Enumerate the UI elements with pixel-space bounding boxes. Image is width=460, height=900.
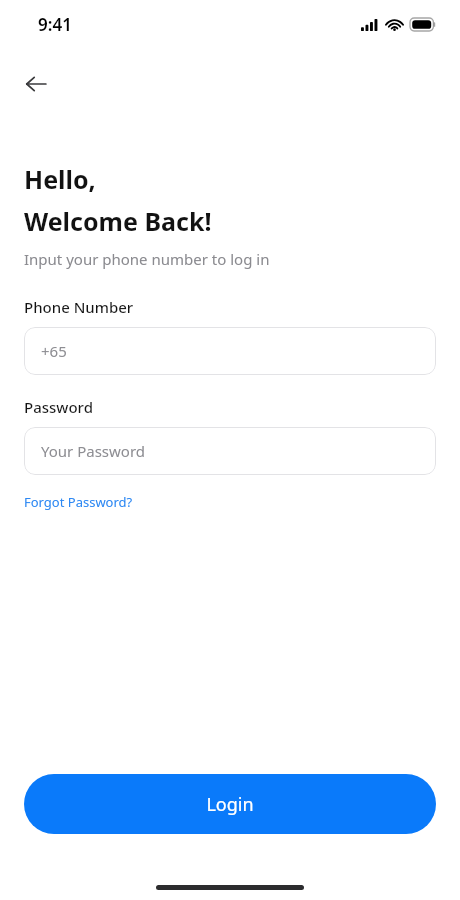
button[interactable]: Back <box>14 62 58 106</box>
staticText: Forgot Password? <box>24 493 133 511</box>
staticText: Welcome Back! <box>24 204 212 238</box>
staticText: Hello, <box>24 162 96 196</box>
button[interactable]: Your Password <box>24 427 436 475</box>
staticText: Login <box>206 792 254 817</box>
button[interactable]: Forgot Password? <box>24 491 133 513</box>
button[interactable]: +65 <box>24 327 436 375</box>
staticText: Input your phone number to log in <box>24 249 270 269</box>
button[interactable]: Login <box>24 774 436 834</box>
staticText: 9:41 <box>38 13 72 36</box>
staticText: +65 <box>41 341 67 361</box>
staticText: Password <box>24 397 93 417</box>
staticText: Phone Number <box>24 297 134 317</box>
staticText: Your Password <box>41 441 146 461</box>
